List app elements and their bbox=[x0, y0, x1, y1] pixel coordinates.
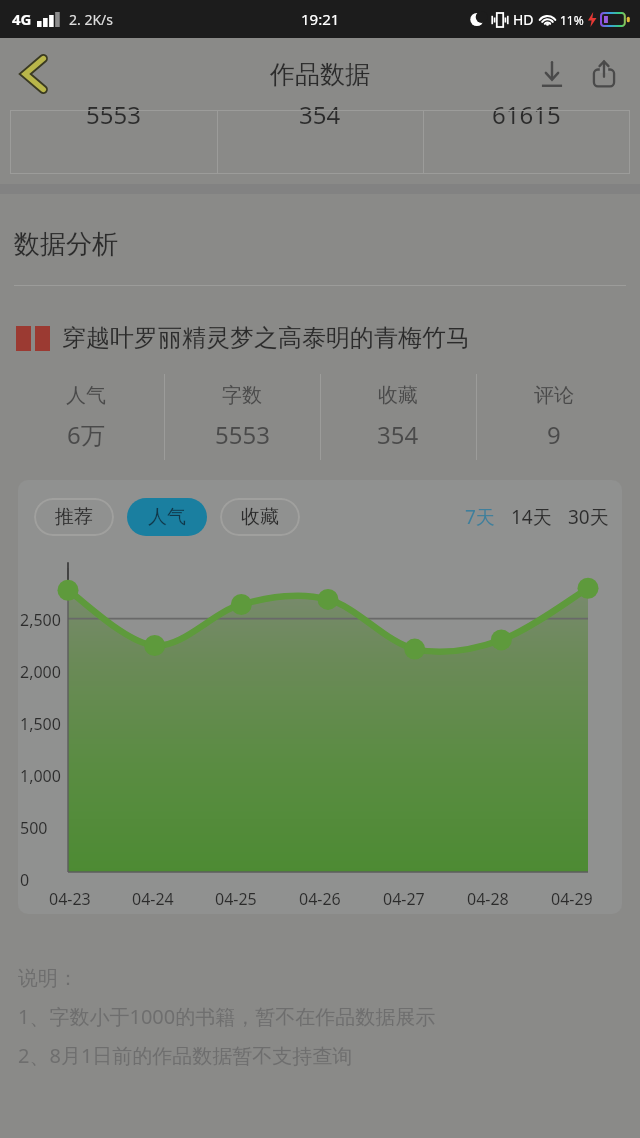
staticText: 数据分析 bbox=[14, 228, 118, 261]
button[interactable]: Back bbox=[6, 46, 62, 102]
staticText: HD bbox=[513, 10, 534, 29]
staticText: 0 bbox=[20, 869, 30, 891]
staticText: 61615 bbox=[492, 98, 561, 131]
staticText: 6万 bbox=[67, 418, 105, 451]
staticText: 04-28 bbox=[467, 888, 509, 910]
staticText: 354 bbox=[299, 98, 341, 131]
staticText: 354 bbox=[377, 418, 419, 451]
staticText: 说明： bbox=[18, 966, 78, 991]
staticText: 04-24 bbox=[132, 888, 174, 910]
staticText: 人气 bbox=[66, 383, 106, 408]
staticText: 30天 bbox=[568, 504, 609, 530]
staticText: 穿越叶罗丽精灵梦之高泰明的青梅竹马 bbox=[62, 323, 470, 353]
staticText: 11% bbox=[560, 12, 584, 28]
button[interactable]: 推荐 bbox=[34, 498, 114, 536]
button[interactable]: 收藏 bbox=[220, 498, 300, 536]
staticText: 14天 bbox=[511, 504, 552, 530]
staticText: 推荐 bbox=[55, 505, 93, 529]
button[interactable]: 人气 bbox=[127, 498, 207, 536]
staticText: 04-26 bbox=[299, 888, 341, 910]
button[interactable]: 穿越叶罗丽精灵梦之高泰明的青梅竹马 bbox=[16, 312, 634, 364]
button[interactable]: 30天 bbox=[565, 498, 612, 536]
staticText: 2,500 bbox=[20, 609, 61, 631]
staticText: 1、字数小于1000的书籍，暂不在作品数据展示 bbox=[18, 1003, 436, 1030]
button[interactable]: Share bbox=[578, 48, 630, 100]
staticText: 收藏 bbox=[241, 505, 279, 529]
staticText: 收藏 bbox=[378, 383, 418, 408]
staticText: 04-27 bbox=[383, 888, 425, 910]
staticText: 1,000 bbox=[20, 765, 61, 787]
staticText: 人气 bbox=[148, 505, 186, 529]
staticText: 2. 2K/s bbox=[69, 10, 113, 29]
staticText: 字数 bbox=[222, 383, 262, 408]
staticText: 2,000 bbox=[20, 661, 61, 683]
staticText: 4G bbox=[12, 9, 32, 29]
button[interactable]: Download bbox=[526, 48, 578, 100]
staticText: 9 bbox=[547, 418, 561, 451]
button[interactable]: 7天 bbox=[462, 498, 498, 536]
staticText: 5553 bbox=[215, 418, 270, 451]
staticText: 04-25 bbox=[215, 888, 257, 910]
staticText: 2、8月1日前的作品数据暂不支持查询 bbox=[18, 1042, 353, 1069]
staticText: 7天 bbox=[465, 504, 495, 530]
staticText: 04-29 bbox=[551, 888, 593, 910]
staticText: 04-23 bbox=[49, 888, 91, 910]
staticText: 500 bbox=[20, 817, 48, 839]
staticText: 19:21 bbox=[301, 9, 340, 29]
staticText: 1,500 bbox=[20, 713, 61, 735]
button[interactable]: 14天 bbox=[508, 498, 555, 536]
staticText: 5553 bbox=[86, 98, 141, 131]
staticText: 作品数据 bbox=[270, 59, 370, 90]
staticText: 评论 bbox=[534, 383, 574, 408]
